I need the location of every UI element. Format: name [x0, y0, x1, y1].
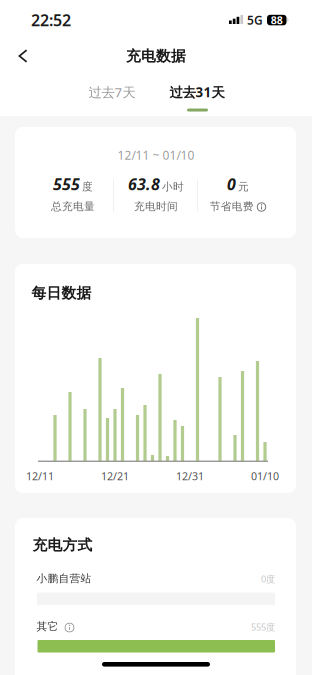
staticText: 充电数据 — [126, 47, 186, 65]
staticText: 555度 — [251, 621, 275, 633]
button[interactable]: 过去31天 — [157, 79, 237, 105]
staticText: 01/10 — [251, 469, 279, 483]
staticText: 元 — [238, 180, 249, 193]
staticText: 555 — [53, 173, 80, 195]
staticText: 63.8 — [128, 173, 160, 195]
staticText: 5G — [247, 12, 263, 28]
staticText: 度 — [82, 180, 93, 193]
staticText: 充电方式 — [32, 536, 92, 554]
button[interactable]: 其它说明 — [64, 621, 74, 633]
button[interactable]: 返回 — [8, 45, 38, 67]
staticText: 12/21 — [101, 469, 129, 483]
staticText: 88 — [271, 13, 283, 27]
staticText: 其它 — [36, 620, 58, 633]
staticText: 12/11 ~ 01/10 — [117, 147, 194, 163]
button[interactable]: 过去7天 — [72, 79, 152, 105]
staticText: 0 — [227, 173, 236, 195]
button[interactable]: 节省电费说明 — [210, 200, 266, 213]
staticText: 节省电费 — [210, 200, 254, 213]
staticText: 每日数据 — [31, 284, 91, 302]
staticText: 12/31 — [176, 469, 204, 483]
staticText: 22:52 — [31, 9, 71, 31]
staticText: 过去31天 — [169, 83, 224, 101]
staticText: 小时 — [162, 180, 184, 193]
staticText: 小鹏自营站 — [36, 572, 91, 585]
staticText: 过去7天 — [88, 83, 135, 101]
staticText: 总充电量 — [51, 200, 95, 213]
staticText: 12/11 — [26, 469, 54, 483]
staticText: 0度 — [261, 573, 275, 585]
staticText: 充电时间 — [134, 200, 178, 213]
